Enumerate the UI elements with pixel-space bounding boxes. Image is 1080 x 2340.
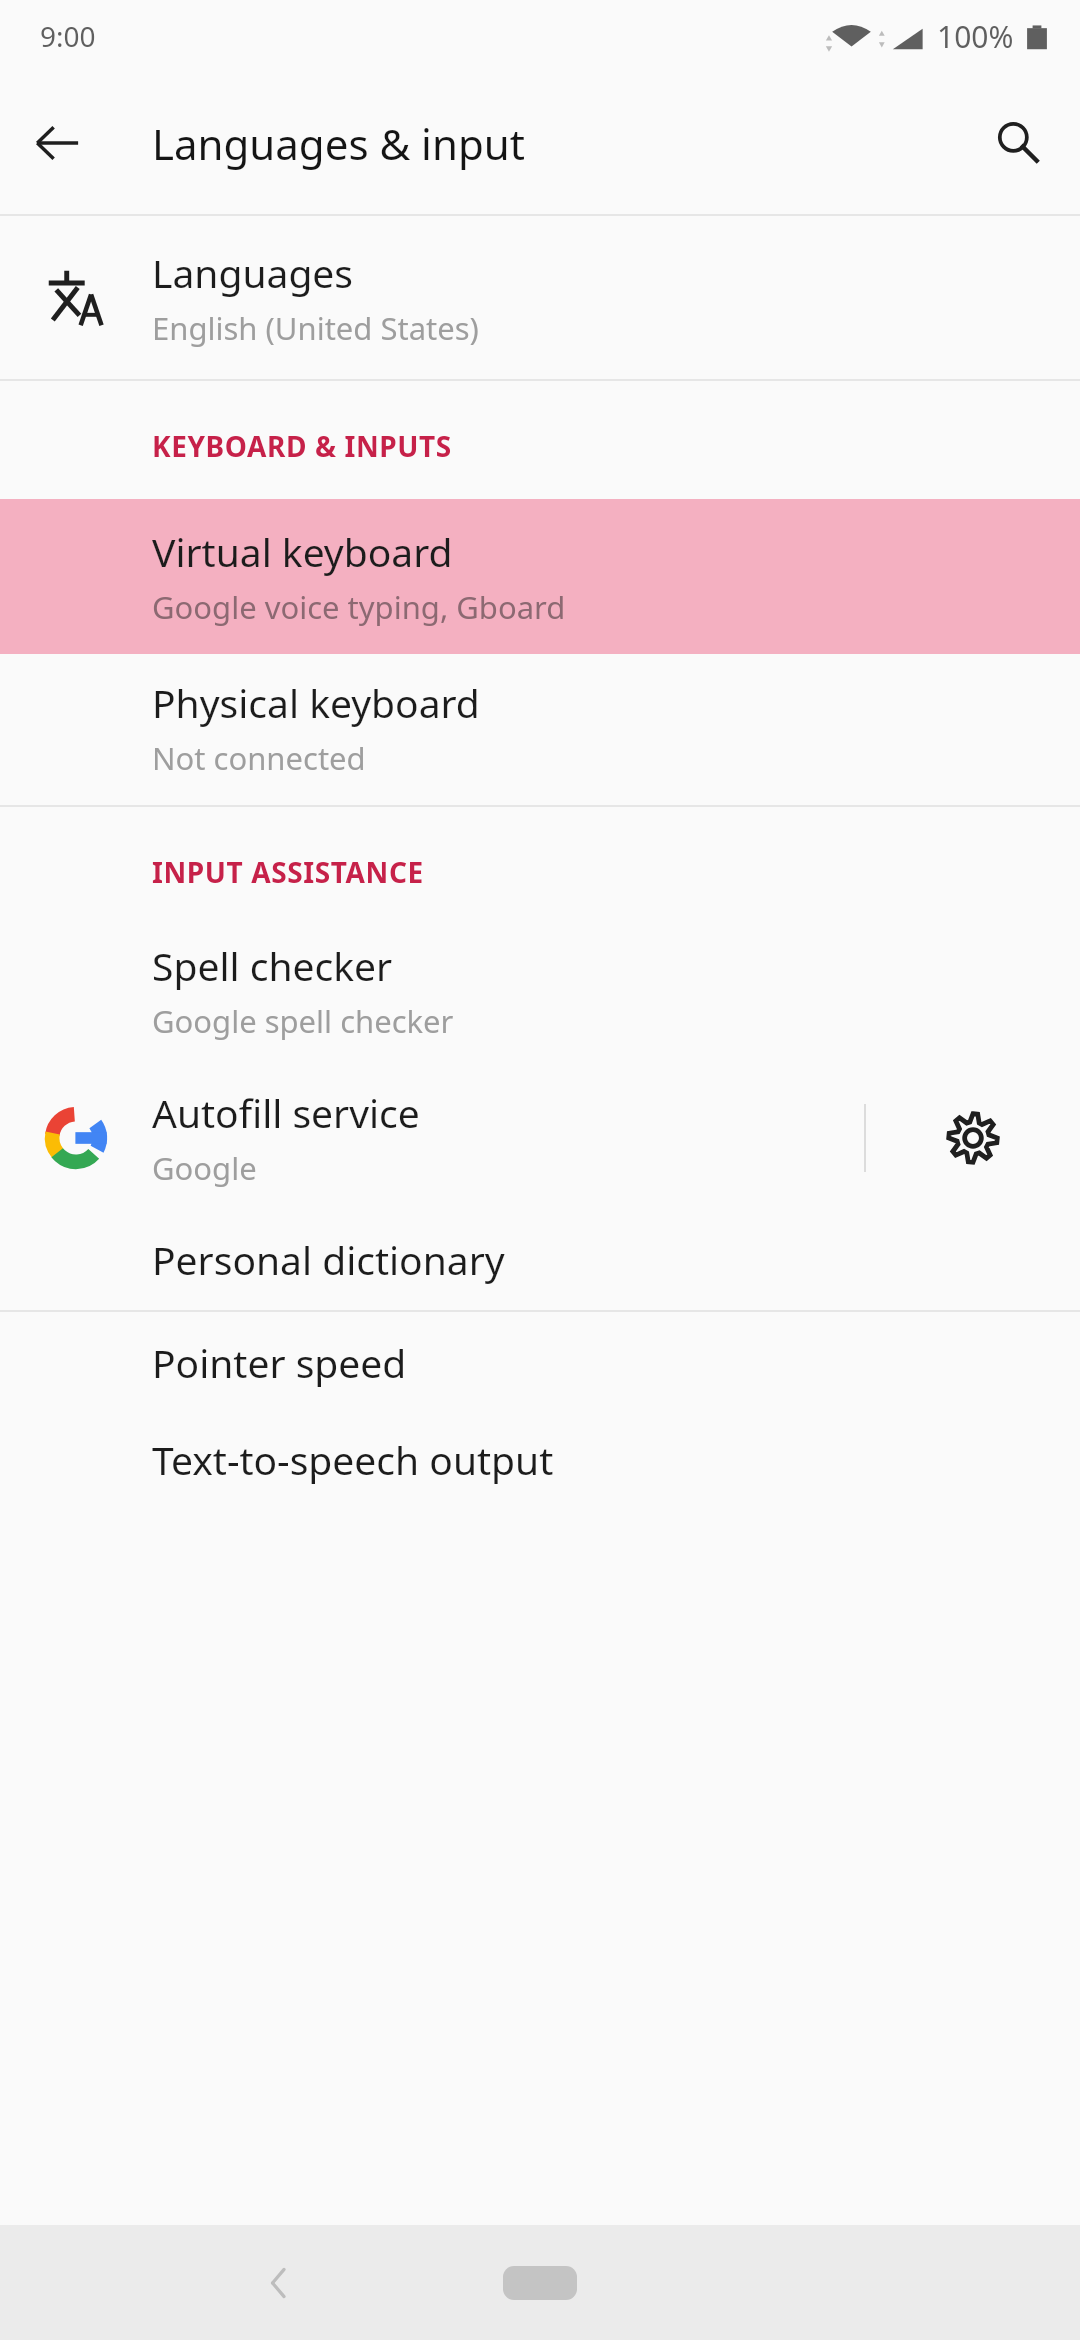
staticText: English (United States): [152, 307, 479, 349]
button[interactable]: Text-to-speech output: [0, 1413, 1080, 1510]
staticText: Languages: [152, 246, 354, 299]
button[interactable]: Physical keyboard: [0, 654, 1080, 805]
staticText: Physical keyboard: [152, 676, 480, 729]
staticText: Google spell checker: [152, 1000, 454, 1042]
staticText: Spell checker: [152, 939, 393, 992]
button[interactable]: Virtual keyboard: [0, 499, 1080, 654]
button[interactable]: Autofill service: [0, 1062, 864, 1213]
button[interactable]: Back: [228, 2231, 332, 2335]
staticText: Languages & input: [152, 115, 525, 172]
button[interactable]: Personal dictionary: [0, 1213, 1080, 1310]
staticText: Personal dictionary: [152, 1233, 505, 1286]
staticText: Not connected: [152, 737, 366, 779]
staticText: Autofill service: [152, 1086, 420, 1139]
button[interactable]: Autofill service settings: [866, 1073, 1080, 1203]
staticText: Google voice typing, Gboard: [152, 586, 566, 628]
staticText: Virtual keyboard: [152, 525, 453, 578]
staticText: INPUT ASSISTANCE: [152, 853, 424, 891]
staticText: Google: [152, 1147, 257, 1189]
staticText: 9:00: [40, 17, 96, 55]
staticText: Pointer speed: [152, 1336, 407, 1389]
button[interactable]: Languages: [0, 216, 1080, 379]
button[interactable]: Pointer speed: [0, 1312, 1080, 1413]
staticText: 100%: [937, 16, 1014, 57]
button[interactable]: Home: [485, 2228, 595, 2338]
staticText: KEYBOARD & INPUTS: [152, 427, 452, 465]
button[interactable]: Search: [978, 103, 1058, 183]
button[interactable]: Spell checker: [0, 925, 1080, 1062]
staticText: Text-to-speech output: [152, 1433, 554, 1486]
button[interactable]: Back: [18, 104, 96, 182]
